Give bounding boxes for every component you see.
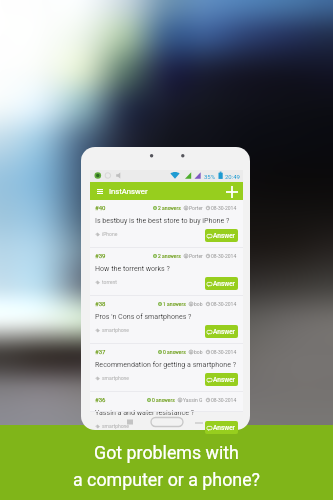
- staticText: bob: [194, 349, 203, 355]
- staticText: InstAnswer: [109, 187, 148, 196]
- staticText: smartphone: [102, 375, 129, 381]
- staticText: Got problems with: [94, 442, 239, 463]
- button[interactable]: Ask a question: [224, 184, 239, 199]
- staticText: #37: [95, 348, 106, 355]
- staticText: Recommendation for getting a smartphone …: [95, 360, 237, 368]
- staticText: 08-30-2014: [211, 205, 237, 211]
- staticText: Answer: [213, 424, 236, 432]
- button[interactable]: Answer: [205, 421, 238, 434]
- button[interactable]: Answer: [205, 277, 238, 290]
- staticText: 08-30-2014: [211, 301, 237, 307]
- button[interactable]: #38: [90, 296, 243, 344]
- button[interactable]: #40: [90, 200, 243, 248]
- staticText: 20:49: [225, 173, 240, 180]
- staticText: 2 answers: [158, 253, 181, 259]
- staticText: 35%: [204, 173, 216, 180]
- button[interactable]: #36: [90, 392, 243, 412]
- staticText: 08-30-2014: [211, 253, 237, 259]
- staticText: smartphone: [102, 327, 129, 333]
- staticText: Yassin G: [183, 397, 203, 403]
- staticText: How the torrent works ?: [95, 264, 170, 272]
- staticText: Answer: [213, 232, 236, 240]
- staticText: #40: [95, 204, 106, 211]
- staticText: 08-30-2014: [211, 397, 237, 403]
- staticText: 1 answers: [163, 301, 186, 307]
- staticText: 0 answers: [163, 349, 186, 355]
- staticText: Porter: [189, 205, 203, 211]
- staticText: Answer: [213, 328, 236, 336]
- staticText: 0 answers: [152, 397, 175, 403]
- button[interactable]: Open navigation menu: [95, 186, 105, 196]
- staticText: torrent: [102, 279, 117, 285]
- staticText: Answer: [213, 376, 236, 384]
- staticText: Is bestbuy is the best store to buy iPho…: [95, 216, 230, 224]
- staticText: 08-30-2014: [211, 349, 237, 355]
- button[interactable]: Answer: [205, 325, 238, 338]
- staticText: bob: [194, 301, 203, 307]
- staticText: 2 answers: [158, 205, 181, 211]
- staticText: Porter: [189, 253, 203, 259]
- staticText: iPhone: [102, 231, 118, 237]
- staticText: Pros 'n Cons of smartphones ?: [95, 312, 192, 320]
- button[interactable]: #37: [90, 344, 243, 392]
- staticText: Yassin a and water resistance ?: [95, 408, 195, 416]
- button[interactable]: #39: [90, 248, 243, 296]
- staticText: #38: [95, 300, 106, 307]
- staticText: smartphone: [102, 423, 129, 429]
- staticText: #39: [95, 252, 106, 259]
- staticText: Answer: [213, 280, 236, 288]
- staticText: a computer or a phone?: [73, 469, 260, 490]
- staticText: #36: [95, 396, 106, 403]
- button[interactable]: Answer: [205, 229, 238, 242]
- button[interactable]: Answer: [205, 373, 238, 386]
